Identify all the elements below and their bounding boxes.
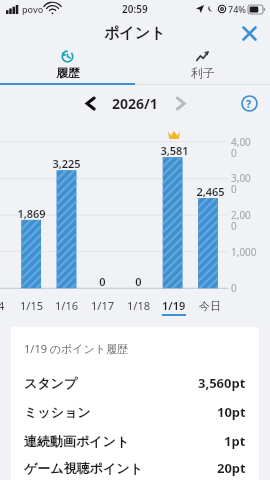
- staticText: 1/19 のポイント履歴: [24, 341, 129, 356]
- staticText: 20:59: [122, 2, 148, 16]
- button[interactable]: ミッション: [24, 397, 246, 426]
- button[interactable]: 連続動画ポイント: [24, 426, 246, 455]
- staticText: 3,00 0: [231, 171, 251, 196]
- staticText: 74%: [228, 3, 246, 15]
- button[interactable]: Previous month: [76, 89, 104, 117]
- staticText: 3,581: [160, 143, 189, 158]
- staticText: ゲーム視聴ポイント: [24, 460, 143, 476]
- staticText: ポイント: [104, 24, 166, 43]
- staticText: 3,560pt: [198, 374, 246, 392]
- staticText: ?: [246, 96, 252, 111]
- button[interactable]: 利子: [135, 48, 270, 84]
- staticText: スタンプ: [24, 375, 78, 391]
- staticText: 1/16: [55, 298, 78, 313]
- staticText: 1/17: [91, 298, 114, 313]
- button[interactable]: Close: [236, 20, 262, 46]
- staticText: 4: [0, 298, 5, 313]
- staticText: 4,00 0: [231, 135, 251, 160]
- staticText: 履歴: [56, 65, 80, 80]
- button[interactable]: スタンプ: [24, 368, 246, 397]
- staticText: 0: [231, 281, 237, 295]
- staticText: 1,000: [231, 245, 257, 259]
- staticText: 20pt: [217, 459, 246, 477]
- staticText: 1pt: [224, 432, 246, 450]
- staticText: 0: [135, 274, 142, 289]
- staticText: povo: [22, 3, 44, 15]
- staticText: 1/15: [20, 298, 43, 313]
- button[interactable]: Next month: [166, 89, 194, 117]
- staticText: 1/18: [127, 298, 150, 313]
- staticText: 2,00 0: [231, 208, 251, 233]
- staticText: 1/19: [162, 298, 186, 313]
- staticText: 1,869: [17, 206, 46, 221]
- staticText: 3,225: [52, 156, 81, 171]
- button[interactable]: Help: [236, 90, 262, 116]
- staticText: 今日: [199, 299, 221, 313]
- staticText: 利子: [191, 65, 215, 80]
- staticText: 10pt: [217, 403, 246, 421]
- staticText: ミッション: [24, 404, 91, 420]
- button[interactable]: 履歴: [0, 48, 135, 84]
- button[interactable]: ゲーム視聴ポイント: [24, 455, 246, 480]
- staticText: 0: [99, 274, 106, 289]
- staticText: 2,465: [196, 184, 225, 199]
- staticText: 連続動画ポイント: [24, 433, 130, 449]
- staticText: 2026/1: [112, 94, 158, 113]
